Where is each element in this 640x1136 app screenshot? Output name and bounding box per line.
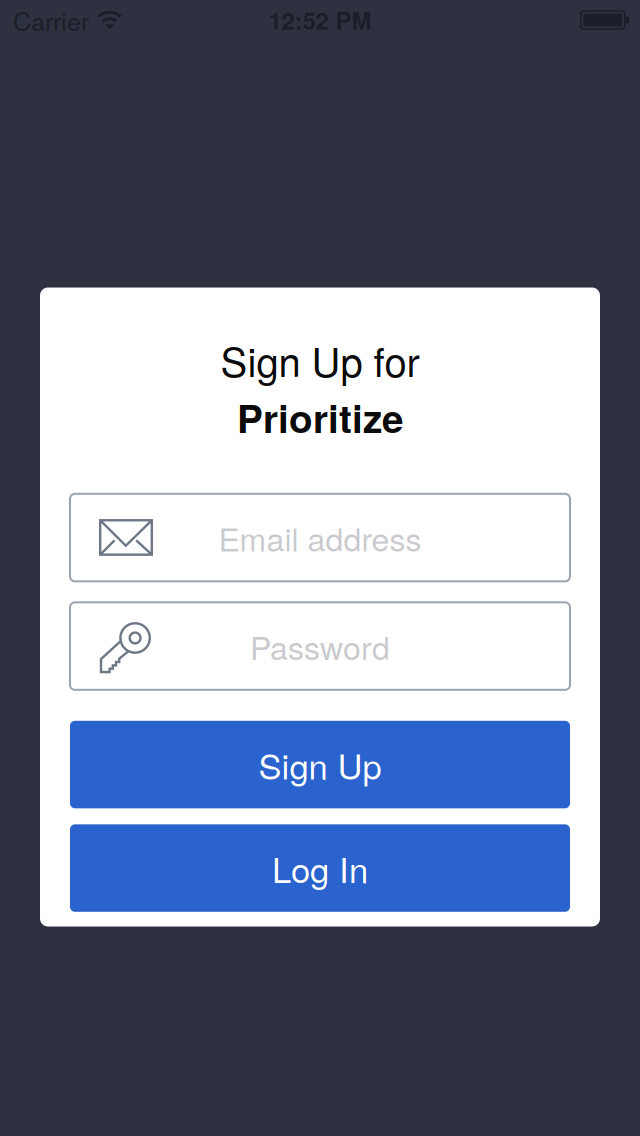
button[interactable]: Password <box>70 602 570 690</box>
staticText: Email address <box>218 515 421 560</box>
button[interactable]: Email address <box>70 494 570 581</box>
staticText: Sign Up for <box>220 331 419 388</box>
staticText: Sign Up <box>258 740 381 789</box>
staticText: Password <box>250 623 390 669</box>
button[interactable]: Sign Up <box>70 721 570 808</box>
staticText: Log In <box>272 843 368 893</box>
button[interactable]: Log In <box>70 824 570 912</box>
staticText: 12:52 PM <box>268 3 371 37</box>
staticText: Carrier <box>13 2 89 38</box>
staticText: Prioritize <box>237 389 403 445</box>
